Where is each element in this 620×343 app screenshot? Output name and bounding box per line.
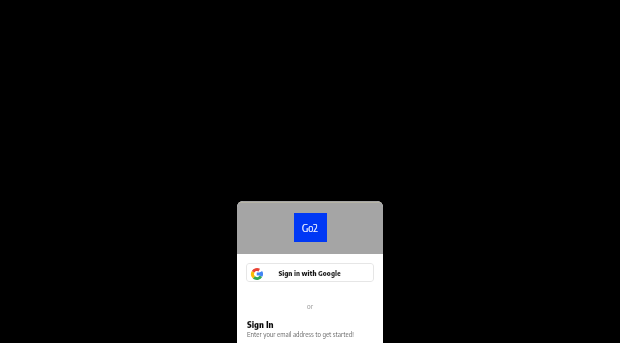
staticText: or <box>237 302 383 311</box>
staticText: Sign In <box>247 319 274 329</box>
button[interactable]: Google <box>246 263 374 282</box>
button[interactable]: Go2 <box>294 213 327 242</box>
staticText: Go2 <box>302 222 318 234</box>
staticText: Sign in with Google <box>278 269 341 278</box>
other: Google <box>251 268 263 280</box>
staticText: Enter your email address to get started! <box>247 330 354 338</box>
